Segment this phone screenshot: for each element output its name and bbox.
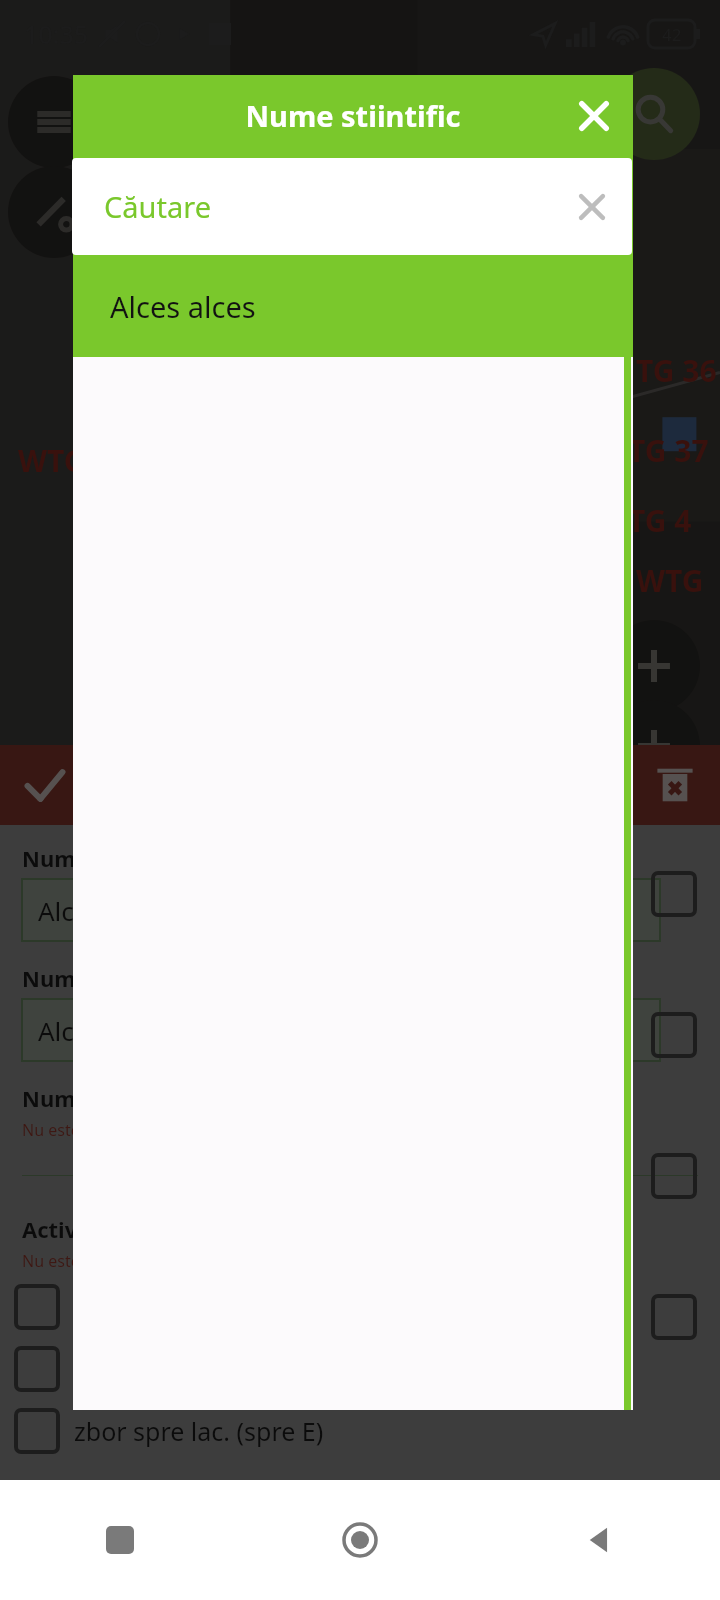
button[interactable]: zbor spre lac. (spre E) (0, 1400, 720, 1462)
staticText: Alces alces (38, 893, 169, 928)
staticText: zbor spre lac. (spre E) (74, 1414, 324, 1448)
staticText: Căutare (104, 187, 212, 226)
staticText: TG 37 (628, 430, 709, 471)
button[interactable]: Action (8, 166, 100, 258)
staticText: Activitate (22, 1214, 130, 1244)
button[interactable]: Căutare (72, 158, 632, 255)
button[interactable]: Recent apps (0, 1480, 240, 1600)
button[interactable]: Clear search (552, 158, 632, 255)
staticText: TG 4 (628, 500, 692, 541)
staticText: Alces alces (110, 287, 256, 326)
button[interactable]: Delete (630, 745, 720, 825)
staticText: Nu este completat (22, 1119, 160, 1141)
button[interactable]: Alces alces (73, 255, 633, 357)
staticText: Nume stiintific (22, 843, 186, 873)
button[interactable]: Back (480, 1480, 720, 1600)
button[interactable]: Search (608, 68, 700, 160)
button[interactable]: Alces alces (22, 879, 660, 941)
button[interactable]: Action (608, 620, 700, 712)
staticText: W (668, 640, 698, 681)
staticText: Alces alces (38, 1013, 169, 1048)
staticText: TG 36 (636, 350, 717, 391)
button[interactable]: zbor deasupra lacului (0, 1338, 720, 1400)
button[interactable]: Save (0, 745, 90, 825)
button[interactable]: Alces alces (22, 999, 660, 1061)
staticText: Nume stiintific (73, 96, 633, 135)
button[interactable]: Close (555, 75, 633, 156)
staticText: WTG (18, 440, 86, 481)
button[interactable]: Home (240, 1480, 480, 1600)
staticText: WTG (636, 560, 704, 601)
button[interactable]: Action (608, 700, 700, 792)
button[interactable] (0, 1276, 720, 1338)
staticText: Nu este completat (22, 1250, 160, 1272)
button[interactable]: Action (8, 76, 100, 168)
staticText: Numar indivizi (22, 1083, 183, 1113)
staticText: Nume popular (22, 963, 180, 993)
